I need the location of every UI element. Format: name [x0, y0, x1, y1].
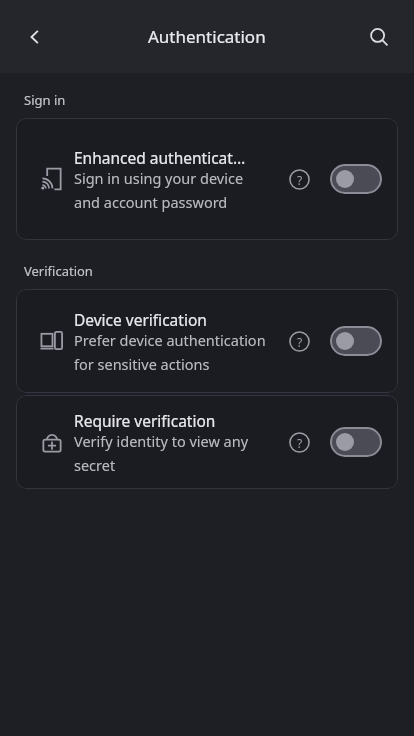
button[interactable]: Help — [282, 162, 316, 196]
staticText: Sign in — [24, 91, 66, 109]
button[interactable]: Device verification — [16, 289, 398, 393]
staticText: Verify identity to view any secret — [74, 431, 272, 475]
button[interactable]: Require verification — [16, 395, 398, 489]
staticText: ? — [297, 334, 303, 350]
staticText: Require verification — [74, 410, 216, 431]
staticText: Verification — [24, 262, 93, 280]
staticText: Sign in using your device and account pa… — [74, 168, 272, 212]
button[interactable]: Back — [12, 14, 58, 60]
staticText: Prefer device authentication for sensiti… — [74, 330, 272, 374]
staticText: Device verification — [74, 309, 207, 330]
staticText: ? — [297, 172, 303, 188]
button[interactable]: Toggle — [330, 164, 382, 194]
button[interactable]: Help — [282, 425, 316, 459]
button[interactable]: Toggle — [330, 427, 382, 457]
staticText: Authentication — [148, 25, 266, 48]
staticText: Enhanced authenticat… — [74, 147, 246, 168]
button[interactable]: Toggle — [330, 326, 382, 356]
button[interactable]: Enhanced authenticat… — [16, 118, 398, 240]
button[interactable]: Help — [282, 324, 316, 358]
staticText: ? — [297, 435, 303, 451]
button[interactable]: Search — [356, 14, 402, 60]
